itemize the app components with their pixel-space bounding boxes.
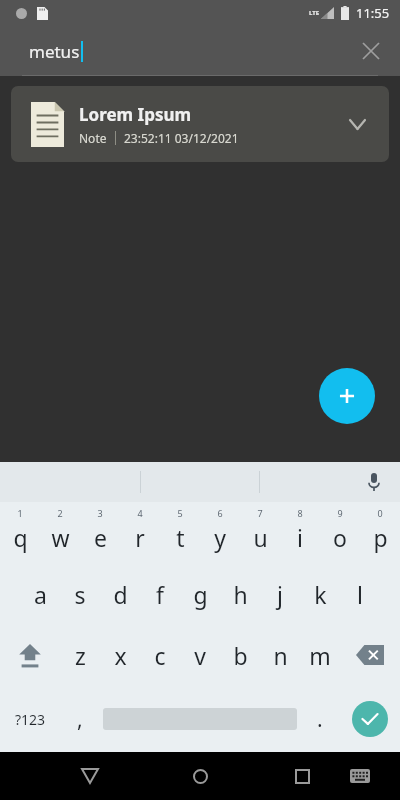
staticText: t [176,522,185,553]
button[interactable]: , [60,686,100,752]
button[interactable]: 4 [120,502,160,564]
staticText: n [273,640,288,671]
button[interactable]: f [140,564,180,624]
staticText: o [333,522,347,553]
staticText: 6 [217,507,223,519]
staticText: e [94,522,107,553]
button[interactable]: 5 [160,502,200,564]
staticText: w [51,522,70,553]
staticText: g [193,579,208,610]
staticText: c [154,640,166,671]
button[interactable]: 2 [40,502,80,564]
staticText: metus [29,40,80,63]
button[interactable]: s [60,564,100,624]
button[interactable]: Shift [0,624,60,686]
button[interactable]: b [220,624,260,686]
staticText: h [233,579,248,610]
staticText: 11:55 [356,4,390,22]
staticText: u [253,522,268,553]
button[interactable]: h [220,564,260,624]
staticText: p [373,522,388,553]
staticText: 4 [137,507,143,519]
staticText: s [74,579,86,610]
button[interactable]: c [140,624,180,686]
button[interactable]: 8 [280,502,320,564]
staticText: l [357,579,363,610]
button[interactable]: a [20,564,60,624]
button[interactable]: Space [100,686,300,752]
button[interactable]: x [100,624,140,686]
staticText: 1 [17,507,23,519]
button[interactable]: 6 [200,502,240,564]
button[interactable]: Done [340,686,400,752]
staticText: m [309,640,331,671]
button[interactable]: 0 [360,502,400,564]
button[interactable]: . [300,686,340,752]
button[interactable]: 7 [240,502,280,564]
staticText: r [135,522,145,553]
button[interactable]: k [300,564,340,624]
button[interactable]: Expand note [337,104,377,144]
staticText: 3 [97,507,103,519]
staticText: j [277,579,283,610]
button[interactable]: g [180,564,220,624]
button[interactable]: Add note [319,368,375,424]
button[interactable]: Switch keyboard [340,756,380,796]
staticText: a [34,579,47,610]
button[interactable]: Recent apps [282,756,322,796]
staticText: 8 [297,507,303,519]
button[interactable]: Lorem Ipsum [11,86,389,162]
button[interactable]: Back [70,756,110,796]
staticText: f [156,579,164,610]
staticText: ?123 [15,710,46,729]
button[interactable]: Clear search [352,32,390,70]
button[interactable]: l [340,564,380,624]
staticText: v [194,640,206,671]
staticText: 23:52:11 03/12/2021 [124,130,239,146]
staticText: , [77,705,83,734]
button[interactable]: d [100,564,140,624]
button[interactable]: 1 [0,502,40,564]
staticText: i [297,522,303,553]
button[interactable]: j [260,564,300,624]
staticText: x [114,640,127,671]
staticText: 0 [377,507,383,519]
staticText: z [75,640,86,671]
button[interactable]: Voice input [356,464,392,500]
staticText: 5 [177,507,183,519]
staticText: q [13,522,28,553]
button[interactable]: Backspace [340,624,400,686]
button[interactable]: Home [180,756,220,796]
staticText: y [214,522,226,553]
button[interactable]: n [260,624,300,686]
staticText: 9 [337,507,343,519]
staticText: d [113,579,128,610]
button[interactable]: z [60,624,100,686]
button[interactable]: v [180,624,220,686]
button[interactable]: m [300,624,340,686]
button[interactable]: ?123 [0,686,60,752]
button[interactable]: 3 [80,502,120,564]
staticText: LTE [309,9,320,17]
staticText: b [233,640,248,671]
staticText: k [314,579,327,610]
staticText: 2 [57,507,63,519]
staticText: 7 [257,507,263,519]
button[interactable]: 9 [320,502,360,564]
staticText: Note [79,130,107,146]
staticText: . [317,705,323,734]
staticText: Lorem Ipsum [79,103,192,126]
